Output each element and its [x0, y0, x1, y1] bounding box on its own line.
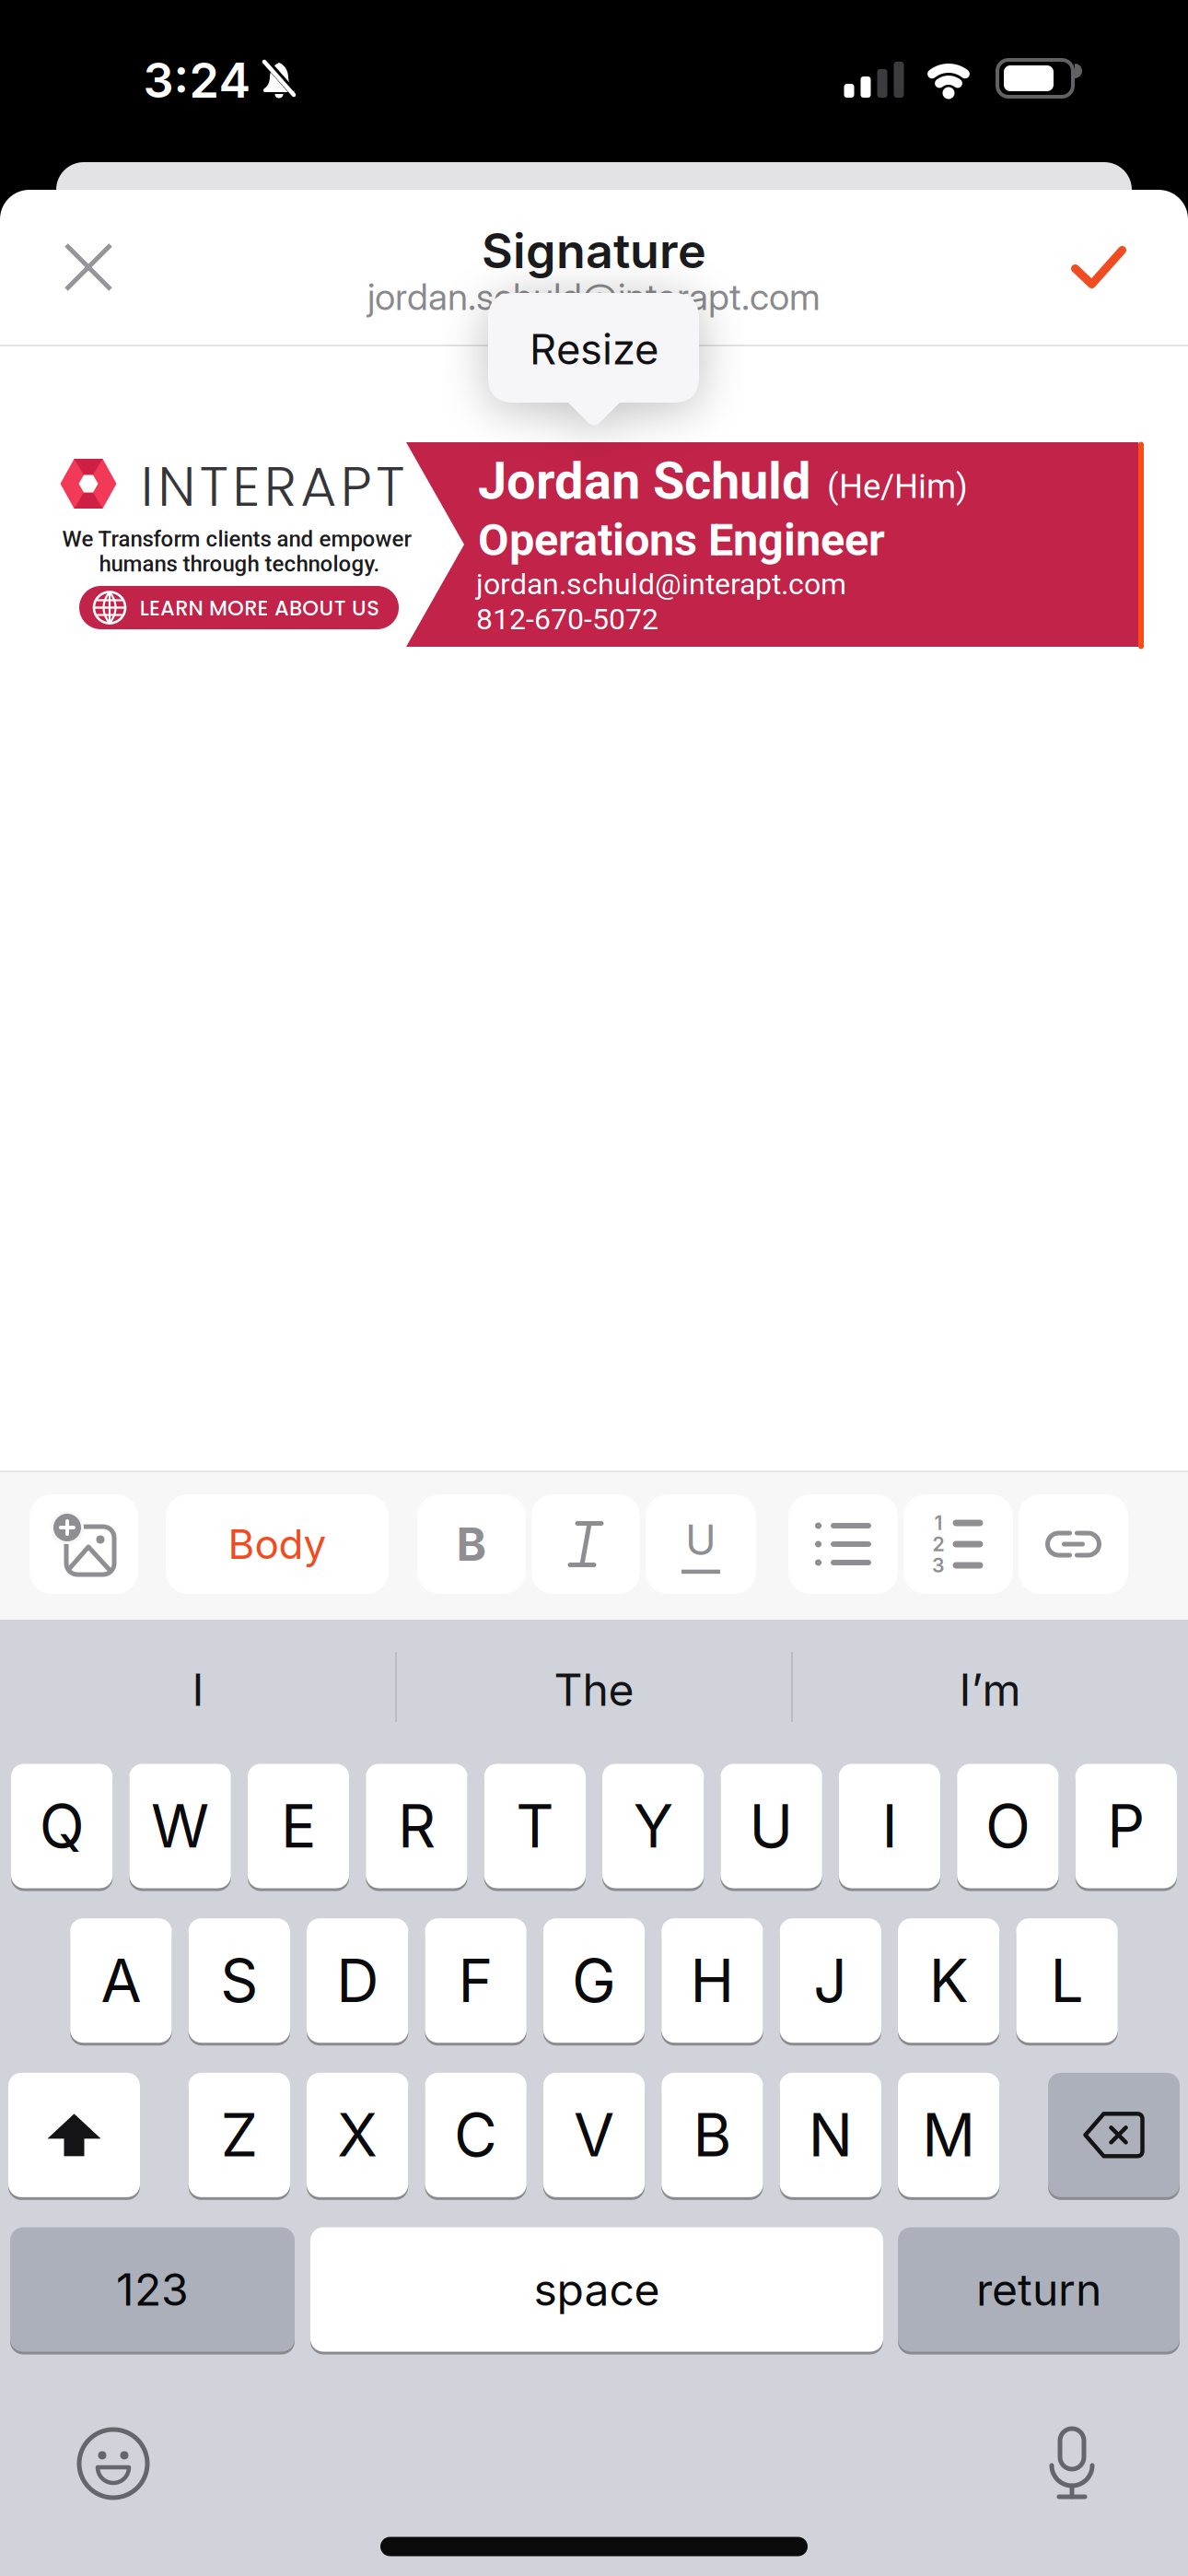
staticText: Q: [39, 1790, 84, 1862]
button[interactable]: B: [661, 2073, 763, 2200]
button[interactable]: B: [417, 1494, 526, 1594]
button[interactable]: Q: [11, 1764, 113, 1891]
staticText: B: [456, 1517, 487, 1572]
staticText: We Transform clients and empower: [62, 526, 411, 552]
button[interactable]: 123: [10, 2227, 295, 2354]
staticText: R: [398, 1790, 436, 1862]
button[interactable]: Shift: [8, 2073, 140, 2200]
button[interactable]: N: [780, 2073, 881, 2200]
staticText: D: [336, 1945, 379, 2016]
staticText: 812-670-5072: [476, 602, 658, 636]
staticText: Body: [228, 1520, 326, 1569]
button[interactable]: S: [188, 1918, 290, 2046]
staticText: Jordan Schuld: [478, 451, 811, 511]
staticText: O: [985, 1790, 1030, 1862]
button[interactable]: 1: [903, 1494, 1013, 1594]
staticText: A: [101, 1945, 141, 2016]
button[interactable]: T: [484, 1764, 586, 1891]
staticText: U: [749, 1790, 793, 1862]
button[interactable]: Body: [166, 1494, 389, 1594]
button[interactable]: [788, 1494, 898, 1594]
button[interactable]: G: [543, 1918, 645, 2046]
button[interactable]: space: [310, 2227, 883, 2354]
button[interactable]: return: [898, 2227, 1180, 2354]
button[interactable]: W: [129, 1764, 231, 1891]
button[interactable]: Z: [188, 2073, 290, 2200]
staticText: return: [976, 2263, 1101, 2316]
staticText: 3:24: [143, 51, 251, 109]
button[interactable]: R: [366, 1764, 467, 1891]
button[interactable]: H: [661, 1918, 763, 2046]
staticText: space: [534, 2263, 660, 2316]
staticText: B: [693, 2099, 732, 2171]
button[interactable]: [29, 1494, 138, 1594]
staticText: U: [685, 1514, 716, 1565]
button[interactable]: [531, 1494, 640, 1594]
button[interactable]: F: [425, 1918, 527, 2046]
staticText: 123: [116, 2263, 189, 2316]
button[interactable]: Close: [66, 245, 111, 289]
button[interactable]: Delete: [1048, 2073, 1180, 2200]
button[interactable]: D: [307, 1918, 408, 2046]
button[interactable]: U: [721, 1764, 822, 1891]
button[interactable]: Emoji: [79, 2430, 147, 2498]
button[interactable]: Y: [602, 1764, 704, 1891]
staticText: jordan.schuld@interapt.com: [476, 567, 846, 601]
staticText: W: [151, 1790, 209, 1862]
staticText: jordan.schuld@interapt.com: [367, 274, 821, 319]
button[interactable]: [1019, 1494, 1128, 1594]
staticText: M: [922, 2099, 975, 2171]
staticText: I’m: [959, 1663, 1021, 1717]
button[interactable]: E: [248, 1764, 349, 1891]
staticText: The: [554, 1663, 634, 1717]
button[interactable]: I: [10, 1637, 386, 1742]
button[interactable]: Save: [1075, 250, 1122, 284]
button[interactable]: J: [780, 1918, 881, 2046]
staticText: humans through technology.: [99, 551, 380, 577]
staticText: F: [458, 1945, 493, 2016]
staticText: LEARN MORE ABOUT US: [140, 593, 380, 623]
staticText: Signature: [482, 222, 706, 280]
staticText: S: [220, 1945, 258, 2016]
button[interactable]: P: [1075, 1764, 1177, 1891]
staticText: I: [192, 1663, 204, 1717]
staticText: P: [1107, 1790, 1145, 1862]
button[interactable]: I: [839, 1764, 940, 1891]
staticText: Resize: [530, 324, 658, 375]
staticText: N: [808, 2099, 853, 2171]
staticText: H: [690, 1945, 734, 2016]
button[interactable]: M: [898, 2073, 1000, 2200]
staticText: J: [813, 1945, 848, 2016]
button[interactable]: U: [646, 1494, 756, 1594]
button[interactable]: The: [406, 1637, 782, 1742]
staticText: 3: [932, 1553, 945, 1577]
staticText: (He/Him): [827, 467, 968, 506]
staticText: K: [929, 1945, 969, 2016]
staticText: Y: [633, 1790, 673, 1862]
staticText: Z: [221, 2099, 258, 2171]
staticText: G: [572, 1945, 616, 2016]
button[interactable]: O: [957, 1764, 1059, 1891]
button[interactable]: C: [425, 2073, 527, 2200]
button[interactable]: K: [898, 1918, 1000, 2046]
staticText: Operations Engineer: [478, 514, 885, 566]
staticText: C: [454, 2099, 497, 2171]
staticText: V: [574, 2099, 614, 2171]
staticText: I: [882, 1790, 897, 1862]
button[interactable]: A: [70, 1918, 172, 2046]
staticText: X: [337, 2099, 378, 2171]
button[interactable]: LEARN MORE ABOUT US: [79, 586, 399, 629]
button[interactable]: X: [307, 2073, 408, 2200]
button[interactable]: I’m: [802, 1637, 1178, 1742]
button[interactable]: L: [1016, 1918, 1118, 2046]
staticText: T: [516, 1790, 554, 1862]
staticText: L: [1050, 1945, 1084, 2016]
button[interactable]: V: [543, 2073, 645, 2200]
staticText: 2: [932, 1532, 944, 1556]
staticText: 1: [934, 1511, 943, 1535]
button[interactable]: Dictate: [1044, 2427, 1100, 2500]
staticText: E: [281, 1790, 316, 1862]
staticText: INTERAPT: [141, 448, 405, 525]
